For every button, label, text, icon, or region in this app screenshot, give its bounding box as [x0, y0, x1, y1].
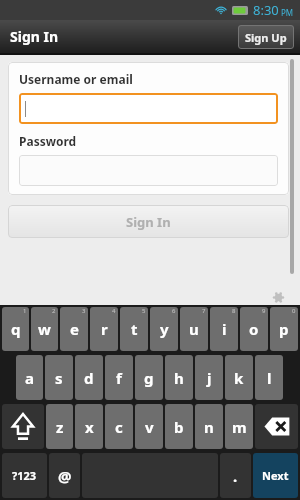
- staticText: k: [234, 368, 244, 388]
- staticText: v: [145, 417, 154, 437]
- staticText: 3: [82, 307, 86, 315]
- staticText: c: [115, 417, 123, 437]
- staticText: u: [189, 319, 199, 339]
- button[interactable]: z: [46, 404, 73, 449]
- staticText: p: [279, 319, 289, 339]
- staticText: .: [233, 466, 238, 486]
- staticText: 9: [262, 307, 266, 315]
- staticText: n: [204, 417, 214, 437]
- button[interactable]: s: [45, 355, 73, 400]
- button[interactable]: [19, 93, 278, 124]
- button[interactable]: Backspace: [255, 404, 298, 449]
- staticText: 4: [112, 307, 116, 315]
- staticText: 7: [202, 307, 206, 315]
- staticText: 2: [52, 307, 56, 315]
- button[interactable]: Sign In: [8, 205, 289, 238]
- staticText: @: [58, 466, 72, 486]
- staticText: i: [222, 319, 227, 339]
- staticText: d: [84, 368, 94, 388]
- staticText: o: [249, 319, 259, 339]
- button[interactable]: h: [165, 355, 193, 400]
- staticText: w: [38, 319, 51, 339]
- button[interactable]: Sign Up: [238, 25, 294, 49]
- staticText: s: [55, 368, 63, 388]
- staticText: Password: [19, 133, 77, 149]
- button[interactable]: t: [120, 307, 148, 351]
- staticText: x: [85, 417, 94, 437]
- button[interactable]: c: [105, 404, 133, 449]
- button[interactable]: Next: [253, 453, 298, 498]
- button[interactable]: .: [220, 453, 251, 498]
- staticText: ?123: [12, 468, 37, 483]
- button[interactable]: r: [90, 307, 118, 351]
- staticText: r: [101, 319, 108, 339]
- button[interactable]: n: [195, 404, 223, 449]
- button[interactable]: k: [225, 355, 253, 400]
- button[interactable]: g: [135, 355, 163, 400]
- button[interactable]: y: [150, 307, 178, 351]
- button[interactable]: q: [2, 307, 29, 351]
- button[interactable]: u: [180, 307, 208, 351]
- staticText: h: [174, 368, 184, 388]
- button[interactable]: i: [210, 307, 238, 351]
- staticText: 1: [23, 307, 27, 315]
- staticText: Sign In: [10, 27, 59, 46]
- staticText: j: [207, 368, 212, 388]
- button[interactable]: e: [60, 307, 88, 351]
- staticText: t: [131, 319, 138, 339]
- staticText: e: [70, 319, 79, 339]
- staticText: l: [267, 368, 272, 388]
- staticText: g: [144, 368, 154, 388]
- staticText: a: [25, 368, 34, 388]
- button[interactable]: m: [225, 404, 253, 449]
- button[interactable]: d: [75, 355, 103, 400]
- button[interactable]: l: [255, 355, 283, 400]
- button[interactable]: p: [270, 307, 298, 351]
- staticText: Username or email: [19, 71, 133, 87]
- button[interactable]: x: [75, 404, 103, 449]
- button[interactable]: o: [240, 307, 268, 351]
- button[interactable]: j: [195, 355, 223, 400]
- staticText: PM: [281, 7, 294, 18]
- staticText: b: [174, 417, 184, 437]
- button[interactable]: Shift: [2, 404, 44, 449]
- button[interactable]: @: [49, 453, 80, 498]
- button[interactable]: v: [135, 404, 163, 449]
- staticText: Sign Up: [245, 30, 287, 45]
- staticText: 8:30: [253, 1, 279, 19]
- button[interactable]: b: [165, 404, 193, 449]
- staticText: m: [232, 417, 247, 437]
- staticText: z: [56, 417, 64, 437]
- staticText: f: [116, 368, 122, 388]
- staticText: 6: [172, 307, 176, 315]
- button[interactable]: ?123: [2, 453, 47, 498]
- staticText: 0: [292, 307, 296, 315]
- button[interactable]: a: [16, 355, 43, 400]
- button[interactable]: w: [31, 307, 58, 351]
- staticText: y: [160, 319, 169, 339]
- staticText: q: [11, 319, 21, 339]
- button[interactable]: [19, 155, 278, 186]
- staticText: 8: [232, 307, 236, 315]
- staticText: Sign In: [126, 213, 171, 231]
- button[interactable]: f: [105, 355, 133, 400]
- staticText: Next: [262, 468, 289, 483]
- staticText: 5: [142, 307, 146, 315]
- button[interactable]: Keyboard settings: [273, 292, 284, 303]
